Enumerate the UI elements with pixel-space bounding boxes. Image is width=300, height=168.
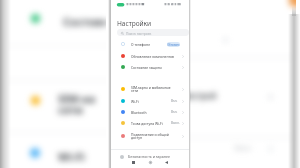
staticText: Поиск настроек — [126, 31, 152, 35]
button[interactable]: О телефоне — [111, 39, 189, 49]
button[interactable]: Точка доступа Wi-Fi — [111, 118, 189, 128]
button[interactable]: Безопасность и заранее — [111, 152, 189, 161]
staticText: SIM-карты и мобильные сети — [131, 85, 171, 93]
button[interactable]: Home — [146, 158, 154, 166]
staticText: Безопасность и заранее — [128, 154, 170, 159]
staticText: Точка доступа Wi-Fi — [131, 121, 163, 125]
button[interactable]: Состояние защиты — [111, 62, 189, 72]
staticText: Wi-Fi — [58, 149, 85, 164]
staticText: Вкл. — [171, 99, 178, 103]
staticText: SIM-ка сети — [58, 91, 96, 118]
staticText: Обновить — [167, 43, 180, 47]
button[interactable]: SIM-карты и мобильные сети — [111, 84, 189, 94]
staticText: О телефоне — [131, 42, 150, 46]
button[interactable]: Wi-Fi — [111, 96, 189, 106]
staticText: астрой — [190, 90, 217, 101]
staticText: Обновление компонентов — [131, 54, 174, 58]
staticText: Состояние защиты — [131, 65, 162, 69]
staticText: Подключение и общий доступ — [131, 132, 169, 140]
button[interactable]: Bluetooth — [111, 107, 189, 117]
staticText: Bluetooth — [131, 110, 147, 114]
staticText: Wi-Fi — [131, 99, 139, 103]
button[interactable]: Подключение и общий доступ — [111, 131, 189, 141]
button[interactable]: Back — [162, 158, 170, 166]
button[interactable]: Обновить — [167, 42, 180, 47]
button[interactable]: Обновление компонентов — [111, 51, 189, 61]
button[interactable]: Recents — [129, 158, 137, 166]
staticText: Вкл. — [171, 110, 178, 114]
staticText: Настройки — [117, 19, 152, 28]
staticText: Выкл. — [171, 121, 180, 125]
staticText: Состояни — [63, 14, 106, 29]
button[interactable]: Поиск настроек — [117, 29, 189, 36]
